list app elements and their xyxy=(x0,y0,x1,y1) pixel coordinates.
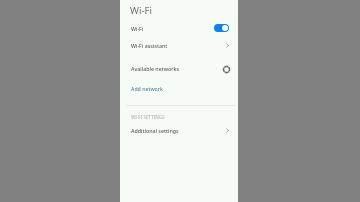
staticText: Wi-Fi xyxy=(130,4,152,17)
staticText: Add network xyxy=(131,85,163,92)
staticText: WI-FI SETTINGS xyxy=(131,114,165,120)
button[interactable]: Available networks xyxy=(120,61,238,75)
button[interactable]: Additional settings xyxy=(120,123,238,137)
staticText: Wi-Fi xyxy=(131,25,144,32)
staticText: Wi-Fi assistant xyxy=(131,42,168,49)
other: Wi-Fi on xyxy=(214,24,229,32)
staticText: Additional settings xyxy=(131,127,179,134)
button[interactable]: Wi-Fi assistant xyxy=(120,38,238,52)
button[interactable]: Wi-Fi xyxy=(120,20,238,36)
button[interactable]: Add network xyxy=(120,81,238,95)
staticText: Available networks xyxy=(131,65,179,72)
other: Scanning xyxy=(222,65,231,74)
